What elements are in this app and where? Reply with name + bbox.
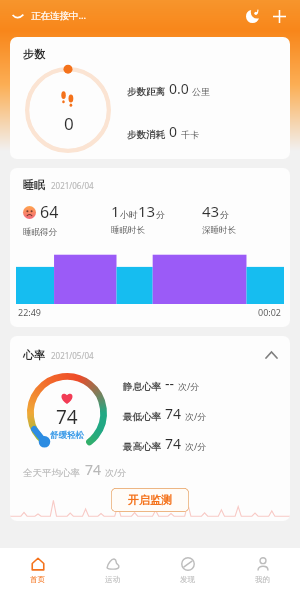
button[interactable]: 我的 <box>225 548 300 591</box>
button[interactable]: Sleep music <box>240 3 266 29</box>
staticText: 0 <box>64 112 74 135</box>
staticText: 发现 <box>180 575 195 584</box>
staticText: 00:02 <box>258 306 282 318</box>
staticText: 全天平均心率 <box>23 467 80 479</box>
staticText: 2021/05/04 <box>51 350 94 361</box>
staticText: 0 <box>169 122 178 141</box>
staticText: 1 <box>111 201 120 221</box>
staticText: 步数消耗 <box>127 129 165 141</box>
staticText: -- <box>165 374 175 393</box>
button[interactable]: Add device <box>266 3 292 29</box>
staticText: 22:49 <box>18 306 42 318</box>
staticText: 74 <box>85 460 102 479</box>
staticText: 分 <box>156 209 165 220</box>
staticText: 0.0 <box>169 79 189 98</box>
staticText: 74 <box>56 404 78 430</box>
staticText: 正在连接中... <box>31 9 87 22</box>
staticText: 分 <box>220 209 229 220</box>
staticText: 最低心率 <box>123 411 161 423</box>
staticText: 小时 <box>120 209 138 220</box>
staticText: 深睡时长 <box>202 225 236 236</box>
staticText: 睡眠时长 <box>111 225 145 236</box>
staticText: 开启监测 <box>128 493 172 507</box>
button[interactable]: 首页 <box>0 548 75 591</box>
staticText: 74 <box>165 434 182 453</box>
staticText: 我的 <box>255 575 270 584</box>
staticText: 舒缓轻松 <box>50 430 84 441</box>
staticText: 次/分 <box>185 410 207 422</box>
staticText: 43 <box>202 201 220 221</box>
staticText: 64 <box>40 201 59 223</box>
staticText: 13 <box>138 201 156 221</box>
staticText: 次/分 <box>185 440 207 452</box>
staticText: 最高心率 <box>123 441 161 453</box>
button[interactable]: 运动 <box>75 548 150 591</box>
staticText: 74 <box>165 404 182 423</box>
staticText: 睡眠 <box>23 178 45 192</box>
staticText: 步数距离 <box>127 86 165 98</box>
staticText: 公里 <box>192 86 210 97</box>
staticText: 睡眠得分 <box>23 227 57 238</box>
staticText: 次/分 <box>105 466 127 478</box>
staticText: 首页 <box>30 575 45 584</box>
staticText: 步数 <box>23 47 45 61</box>
staticText: 次/分 <box>178 380 200 392</box>
button[interactable]: 开启监测 <box>111 488 189 512</box>
staticText: 心率 <box>23 348 45 362</box>
button[interactable]: Collapse heart rate <box>260 344 282 366</box>
button[interactable]: 发现 <box>150 548 225 591</box>
staticText: 静息心率 <box>123 381 161 393</box>
staticText: 2021/06/04 <box>51 180 94 191</box>
staticText: 千卡 <box>181 129 199 140</box>
staticText: 运动 <box>105 575 120 584</box>
